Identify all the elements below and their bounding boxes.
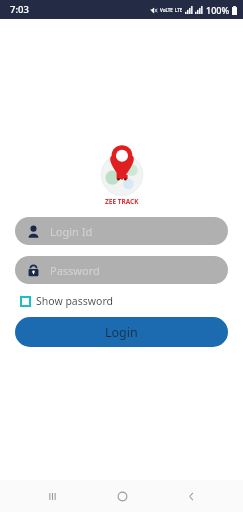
- staticText: LTE: [175, 7, 183, 13]
- button[interactable]: Login Id: [15, 217, 228, 245]
- staticText: Show password: [36, 294, 113, 308]
- button[interactable]: Home: [105, 480, 139, 512]
- staticText: 100%: [206, 4, 230, 16]
- button[interactable]: Recent apps: [35, 480, 69, 512]
- staticText: 7:03: [10, 3, 29, 16]
- button[interactable]: Login: [15, 317, 228, 347]
- staticText: Password: [50, 263, 100, 278]
- button[interactable]: Password: [15, 256, 228, 284]
- button[interactable]: Show password: [15, 291, 228, 311]
- staticText: VoLTE: [160, 7, 173, 13]
- staticText: Login Id: [50, 224, 93, 239]
- staticText: Login: [105, 324, 138, 341]
- staticText: ZEE TRACK: [105, 197, 139, 206]
- button[interactable]: Back: [174, 480, 208, 512]
